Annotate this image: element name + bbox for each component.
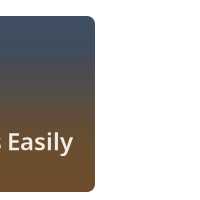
staticText: Needs <box>0 125 2 157</box>
staticText: Easily <box>7 125 73 157</box>
button[interactable]: Needs <box>0 0 95 176</box>
